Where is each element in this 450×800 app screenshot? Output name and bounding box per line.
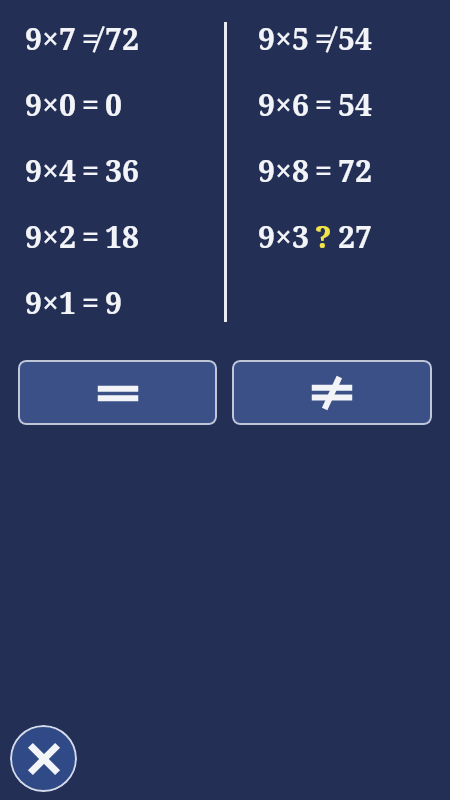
- staticText: 9×2: [25, 216, 76, 257]
- staticText: =: [315, 84, 332, 125]
- staticText: =: [82, 84, 99, 125]
- staticText: 9×3: [258, 216, 309, 257]
- staticText: 54: [338, 84, 372, 125]
- staticText: 9×8: [258, 150, 309, 191]
- button[interactable]: Close: [10, 725, 77, 792]
- staticText: 36: [105, 150, 139, 191]
- staticText: 27: [338, 216, 372, 257]
- staticText: 9×4: [25, 150, 76, 191]
- staticText: =: [315, 150, 332, 191]
- staticText: 54: [338, 18, 372, 59]
- staticText: 9×7: [25, 18, 76, 59]
- staticText: =: [82, 216, 99, 257]
- staticText: 9×1: [25, 282, 76, 323]
- staticText: 72: [338, 150, 372, 191]
- staticText: =: [82, 150, 99, 191]
- staticText: 0: [105, 84, 122, 125]
- staticText: ≠: [82, 18, 99, 59]
- staticText: =: [82, 282, 99, 323]
- staticText: ?: [315, 216, 332, 257]
- staticText: 9: [105, 282, 122, 323]
- button[interactable]: Equals: [18, 360, 217, 425]
- staticText: 9×6: [258, 84, 309, 125]
- staticText: 9×0: [25, 84, 76, 125]
- staticText: 9×5: [258, 18, 309, 59]
- staticText: 72: [105, 18, 139, 59]
- staticText: 18: [105, 216, 139, 257]
- staticText: ≠: [315, 18, 332, 59]
- button[interactable]: Not equals: [232, 360, 432, 425]
